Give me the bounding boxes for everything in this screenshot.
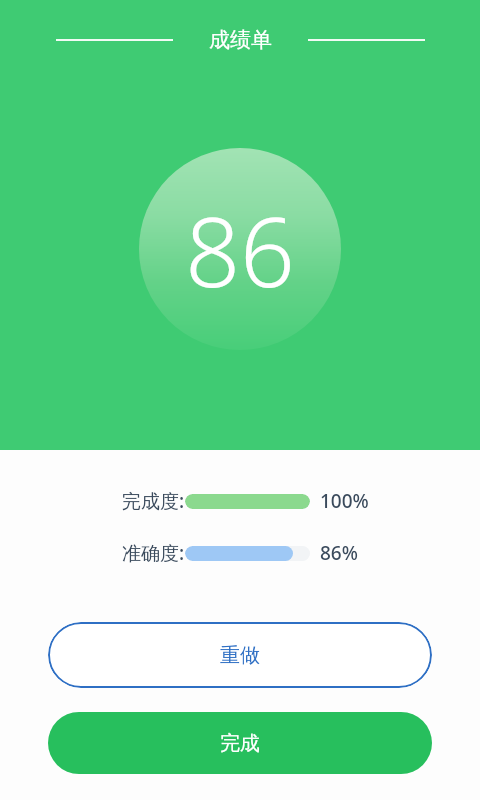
staticText: 成绩单 <box>209 27 272 53</box>
staticText: 100% <box>320 488 369 514</box>
staticText: 86 <box>185 184 295 315</box>
button[interactable]: 重做 <box>48 622 432 688</box>
staticText: 重做 <box>220 643 260 668</box>
staticText: 准确度: <box>122 540 185 566</box>
staticText: 完成 <box>220 731 260 756</box>
button[interactable]: 完成 <box>48 712 432 774</box>
staticText: 完成度: <box>122 488 185 514</box>
staticText: 86% <box>320 540 358 566</box>
